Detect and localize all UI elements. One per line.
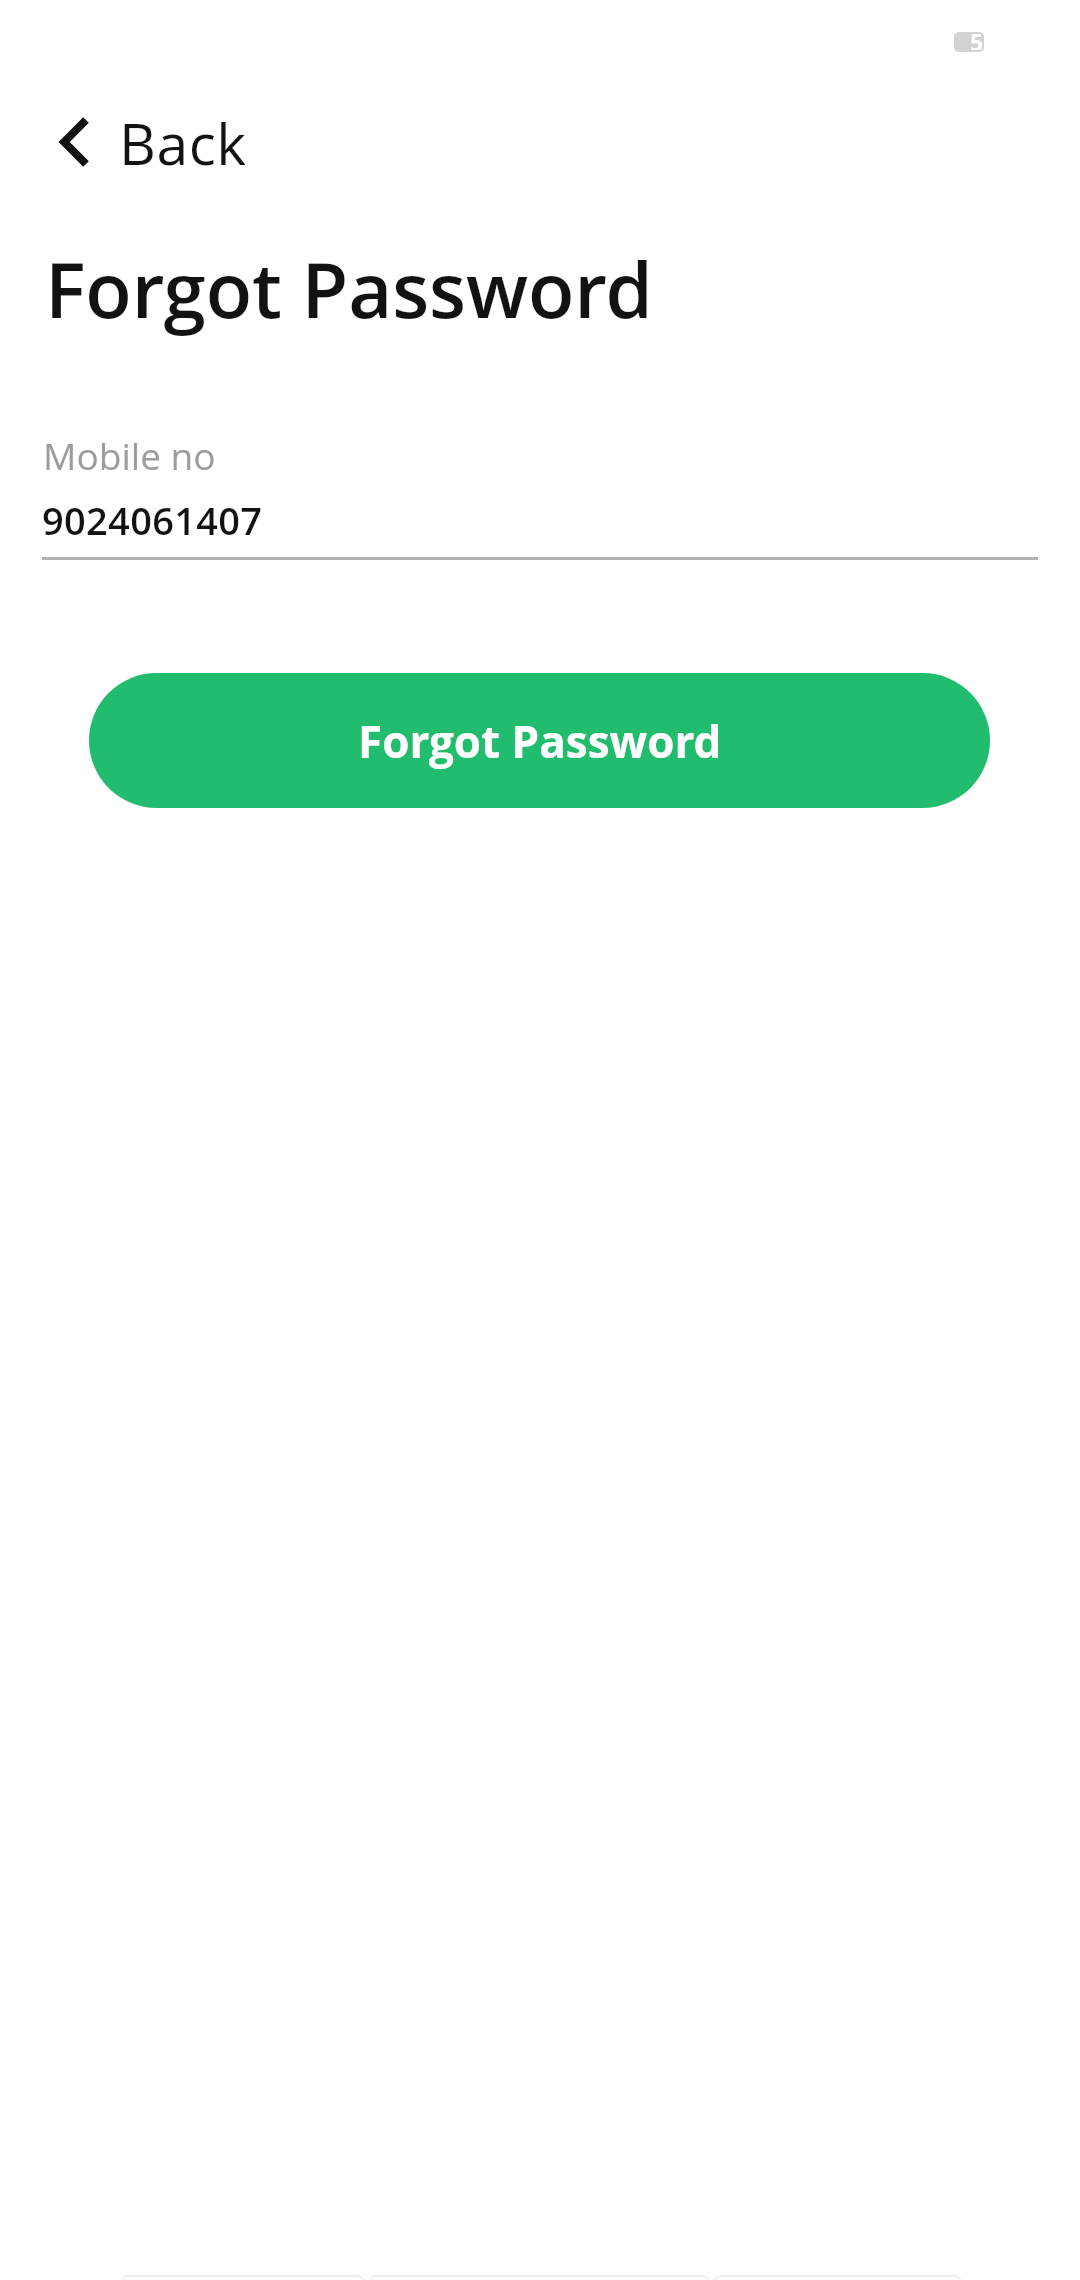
staticText: Mobile no: [43, 430, 216, 480]
button[interactable]: Back: [44, 104, 260, 180]
staticText: Forgot Password: [45, 237, 653, 340]
staticText: 9024061407: [42, 494, 263, 546]
staticText: Forgot Password: [358, 711, 722, 771]
staticText: Back: [119, 104, 247, 180]
button[interactable]: Forgot Password: [89, 673, 990, 808]
staticText: 5: [970, 26, 984, 50]
button[interactable]: [42, 420, 1038, 560]
